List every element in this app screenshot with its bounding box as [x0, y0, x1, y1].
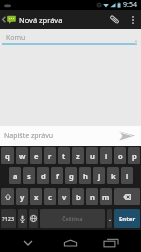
button[interactable]: Navigate up [0, 10, 16, 29]
staticText: Čeština [62, 215, 83, 222]
staticText: Nová zpráva [19, 15, 63, 25]
staticText: ?123 [2, 215, 15, 222]
button[interactable]: s [23, 167, 35, 184]
staticText: o [118, 151, 123, 161]
staticText: u [90, 151, 95, 161]
button[interactable]: n [86, 188, 98, 205]
staticText: g [69, 171, 74, 181]
button[interactable]: b [72, 188, 84, 205]
button[interactable]: o [114, 147, 126, 164]
button[interactable]: Delete [114, 188, 140, 205]
staticText: Komu [6, 33, 26, 43]
staticText: e [34, 151, 39, 161]
button[interactable]: Enter [114, 209, 140, 228]
staticText: z [76, 151, 80, 161]
button[interactable]: f [51, 167, 63, 184]
staticText: t [62, 151, 66, 161]
button[interactable]: q [1, 147, 14, 164]
button[interactable]: l [121, 167, 133, 184]
staticText: . [109, 214, 111, 224]
button[interactable]: e [30, 147, 42, 164]
staticText: b [76, 192, 81, 202]
button[interactable]: g [65, 167, 77, 184]
button[interactable]: Hide keyboard [14, 230, 42, 252]
staticText: n [90, 192, 95, 202]
button[interactable]: Voice input [18, 209, 27, 228]
button[interactable]: t [58, 147, 70, 164]
button[interactable]: h [79, 167, 91, 184]
button[interactable]: Shift [1, 188, 14, 205]
button[interactable]: k [107, 167, 119, 184]
button[interactable]: z [72, 147, 84, 164]
staticText: Napište zprávu [4, 131, 112, 141]
staticText: j [98, 171, 101, 181]
button[interactable]: v [58, 188, 70, 205]
staticText: x [34, 192, 39, 202]
staticText: v [62, 192, 67, 202]
staticText: r [48, 151, 52, 161]
button[interactable]: u [86, 147, 98, 164]
staticText: p [132, 151, 137, 161]
button[interactable]: Change language [29, 209, 38, 228]
button[interactable]: y [16, 188, 28, 205]
staticText: m [102, 192, 110, 202]
staticText: h [83, 171, 88, 181]
button[interactable]: p [128, 147, 140, 164]
button[interactable]: r [44, 147, 56, 164]
button[interactable]: j [93, 167, 105, 184]
button[interactable]: Recent apps [97, 230, 125, 252]
button[interactable]: Home [56, 230, 85, 252]
staticText: Enter [119, 215, 136, 223]
button[interactable]: Attach [103, 10, 125, 29]
button[interactable]: Send [112, 126, 141, 146]
button[interactable]: d [37, 167, 49, 184]
button[interactable]: Čeština [40, 209, 105, 228]
button[interactable]: c [44, 188, 56, 205]
staticText: k [111, 171, 116, 181]
button[interactable]: x [30, 188, 42, 205]
staticText: q [5, 151, 10, 161]
button[interactable]: . [107, 209, 112, 228]
staticText: l [126, 171, 129, 181]
staticText: f [56, 171, 59, 181]
staticText: i [105, 151, 108, 161]
staticText: w [19, 151, 26, 161]
staticText: y [20, 192, 25, 202]
staticText: s [27, 171, 31, 181]
staticText: d [41, 171, 46, 181]
button[interactable]: i [100, 147, 112, 164]
button[interactable]: More options [125, 10, 141, 29]
button[interactable]: a [9, 167, 21, 184]
button[interactable]: ?123 [1, 209, 16, 228]
staticText: 9:54 [123, 0, 137, 10]
button[interactable]: m [100, 188, 112, 205]
button[interactable]: w [16, 147, 28, 164]
staticText: c [48, 192, 52, 202]
staticText: a [13, 171, 18, 181]
